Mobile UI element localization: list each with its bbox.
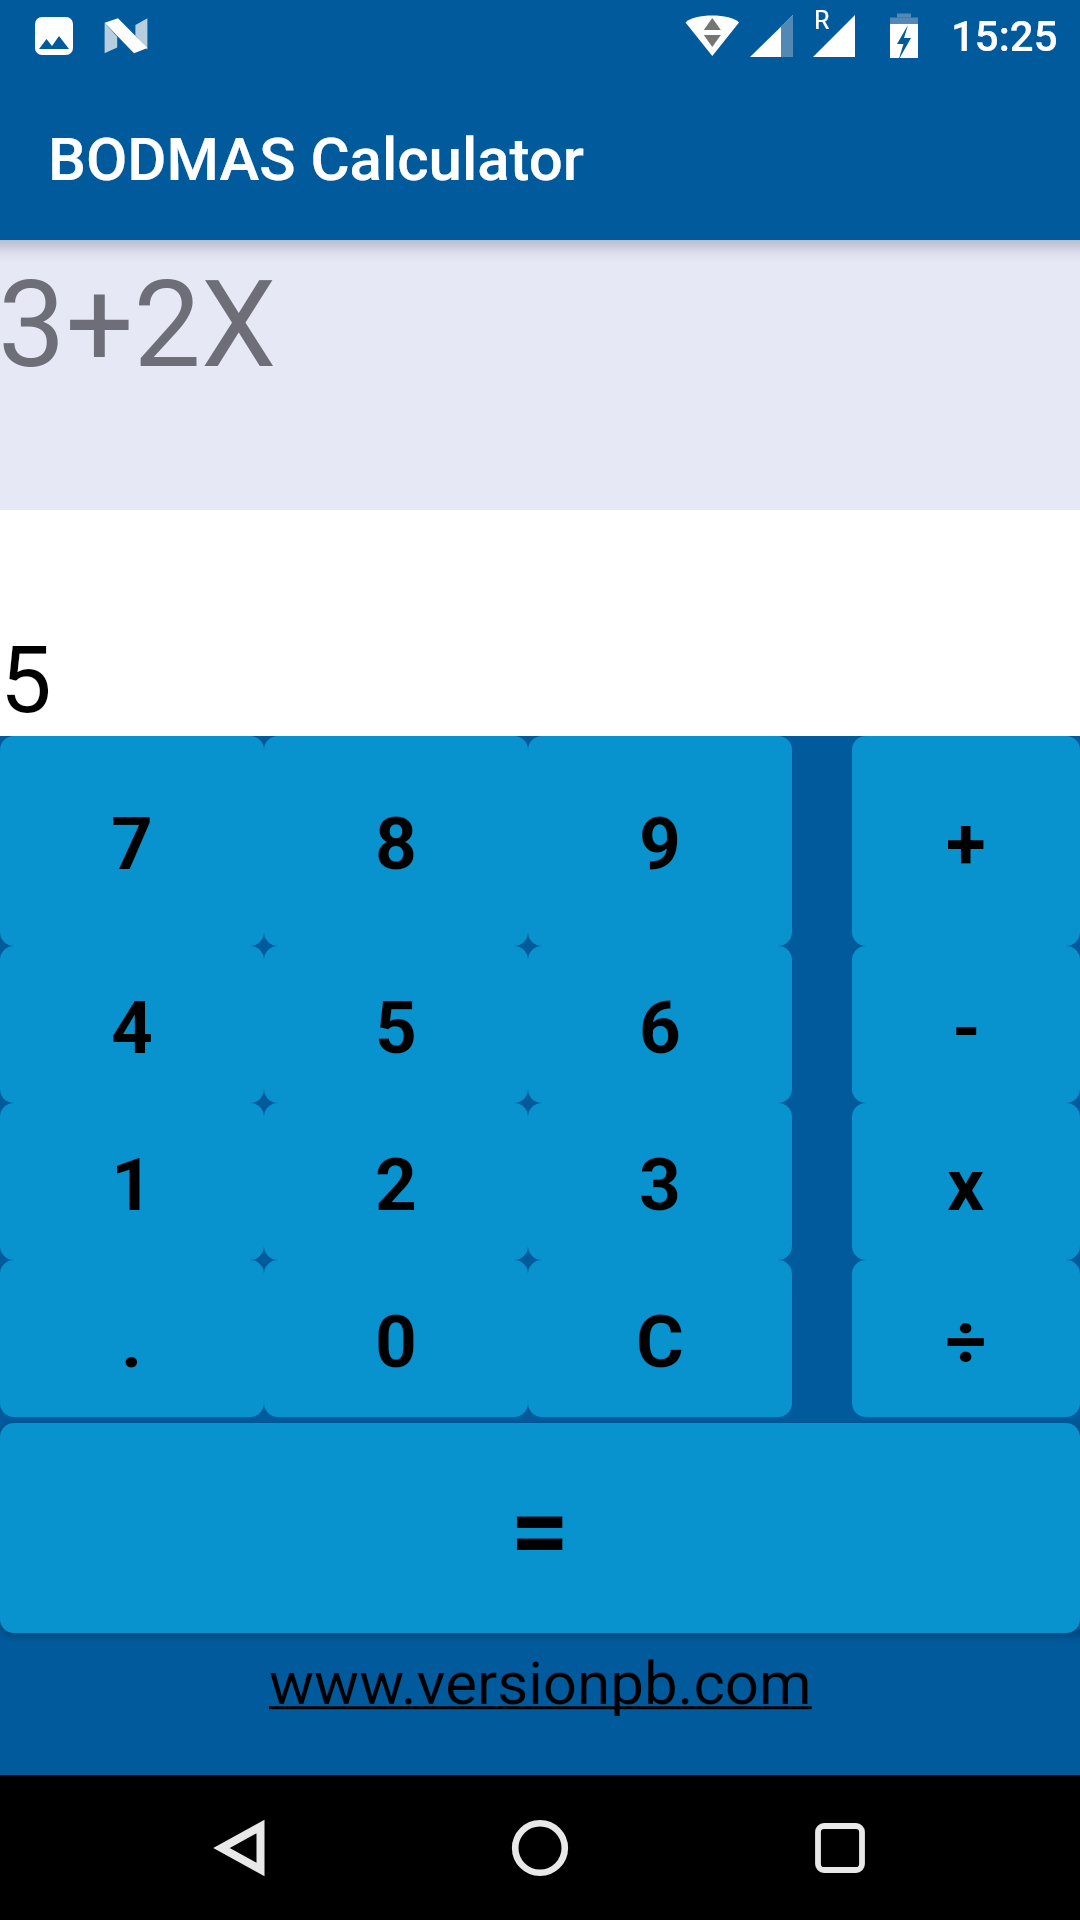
staticText: = bbox=[510, 1470, 570, 1592]
button[interactable]: 7 bbox=[0, 736, 264, 946]
button[interactable]: Home bbox=[460, 1775, 620, 1920]
button[interactable]: . bbox=[0, 1260, 264, 1417]
button[interactable]: - bbox=[852, 946, 1080, 1103]
button[interactable]: 2 bbox=[264, 1103, 528, 1260]
staticText: 0 bbox=[375, 1299, 417, 1385]
button[interactable]: 6 bbox=[528, 946, 792, 1103]
staticText: 15:25 bbox=[951, 12, 1058, 61]
button[interactable]: C bbox=[528, 1260, 792, 1417]
button[interactable]: 8 bbox=[264, 736, 528, 946]
button[interactable]: Back bbox=[161, 1775, 321, 1920]
staticText: x bbox=[947, 1142, 985, 1228]
button[interactable]: + bbox=[852, 736, 1080, 946]
staticText: . bbox=[121, 1299, 143, 1385]
button[interactable]: 0 bbox=[264, 1260, 528, 1417]
button[interactable]: www.versionpb.com bbox=[269, 1648, 812, 1718]
staticText: + bbox=[946, 801, 986, 887]
button[interactable]: 4 bbox=[0, 946, 264, 1103]
button[interactable]: 9 bbox=[528, 736, 792, 946]
staticText: 4 bbox=[111, 985, 153, 1071]
staticText: 2 bbox=[375, 1142, 417, 1228]
staticText: R bbox=[814, 6, 830, 35]
button[interactable]: = bbox=[0, 1423, 1080, 1633]
staticText: 5 bbox=[375, 985, 417, 1071]
button[interactable]: ÷ bbox=[852, 1260, 1080, 1417]
staticText: 3+2X bbox=[0, 255, 277, 396]
staticText: 3 bbox=[639, 1142, 681, 1228]
staticText: 7 bbox=[111, 801, 153, 887]
button[interactable]: Recent apps bbox=[760, 1775, 920, 1920]
staticText: 8 bbox=[375, 801, 417, 887]
button[interactable]: 5 bbox=[264, 946, 528, 1103]
staticText: C bbox=[636, 1299, 684, 1385]
button[interactable]: x bbox=[852, 1103, 1080, 1260]
staticText: 5 bbox=[0, 627, 52, 735]
button[interactable]: 3 bbox=[528, 1103, 792, 1260]
staticText: ÷ bbox=[945, 1299, 987, 1385]
staticText: 6 bbox=[639, 985, 681, 1071]
staticText: BODMAS Calculator bbox=[48, 124, 585, 194]
staticText: 1 bbox=[111, 1142, 153, 1228]
staticText: - bbox=[952, 985, 981, 1071]
button[interactable]: 1 bbox=[0, 1103, 264, 1260]
staticText: 9 bbox=[639, 801, 681, 887]
